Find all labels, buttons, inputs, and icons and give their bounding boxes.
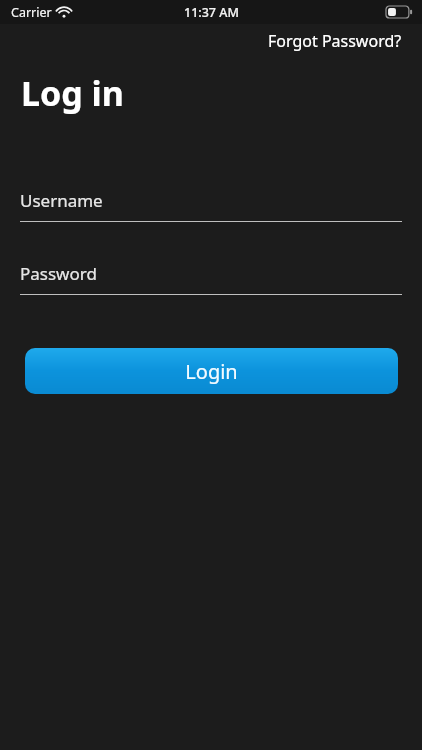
staticText: Log in: [21, 70, 124, 116]
button[interactable]: Username: [0, 189, 422, 222]
button[interactable]: Password: [0, 262, 422, 295]
staticText: Login: [185, 358, 238, 385]
staticText: Carrier: [11, 4, 52, 21]
button[interactable]: Forgot Password?: [248, 26, 422, 56]
button[interactable]: Login: [25, 348, 398, 394]
staticText: Username: [20, 189, 103, 212]
staticText: Password: [20, 262, 97, 285]
staticText: 11:37 AM: [184, 4, 239, 21]
staticText: Forgot Password?: [268, 30, 402, 52]
